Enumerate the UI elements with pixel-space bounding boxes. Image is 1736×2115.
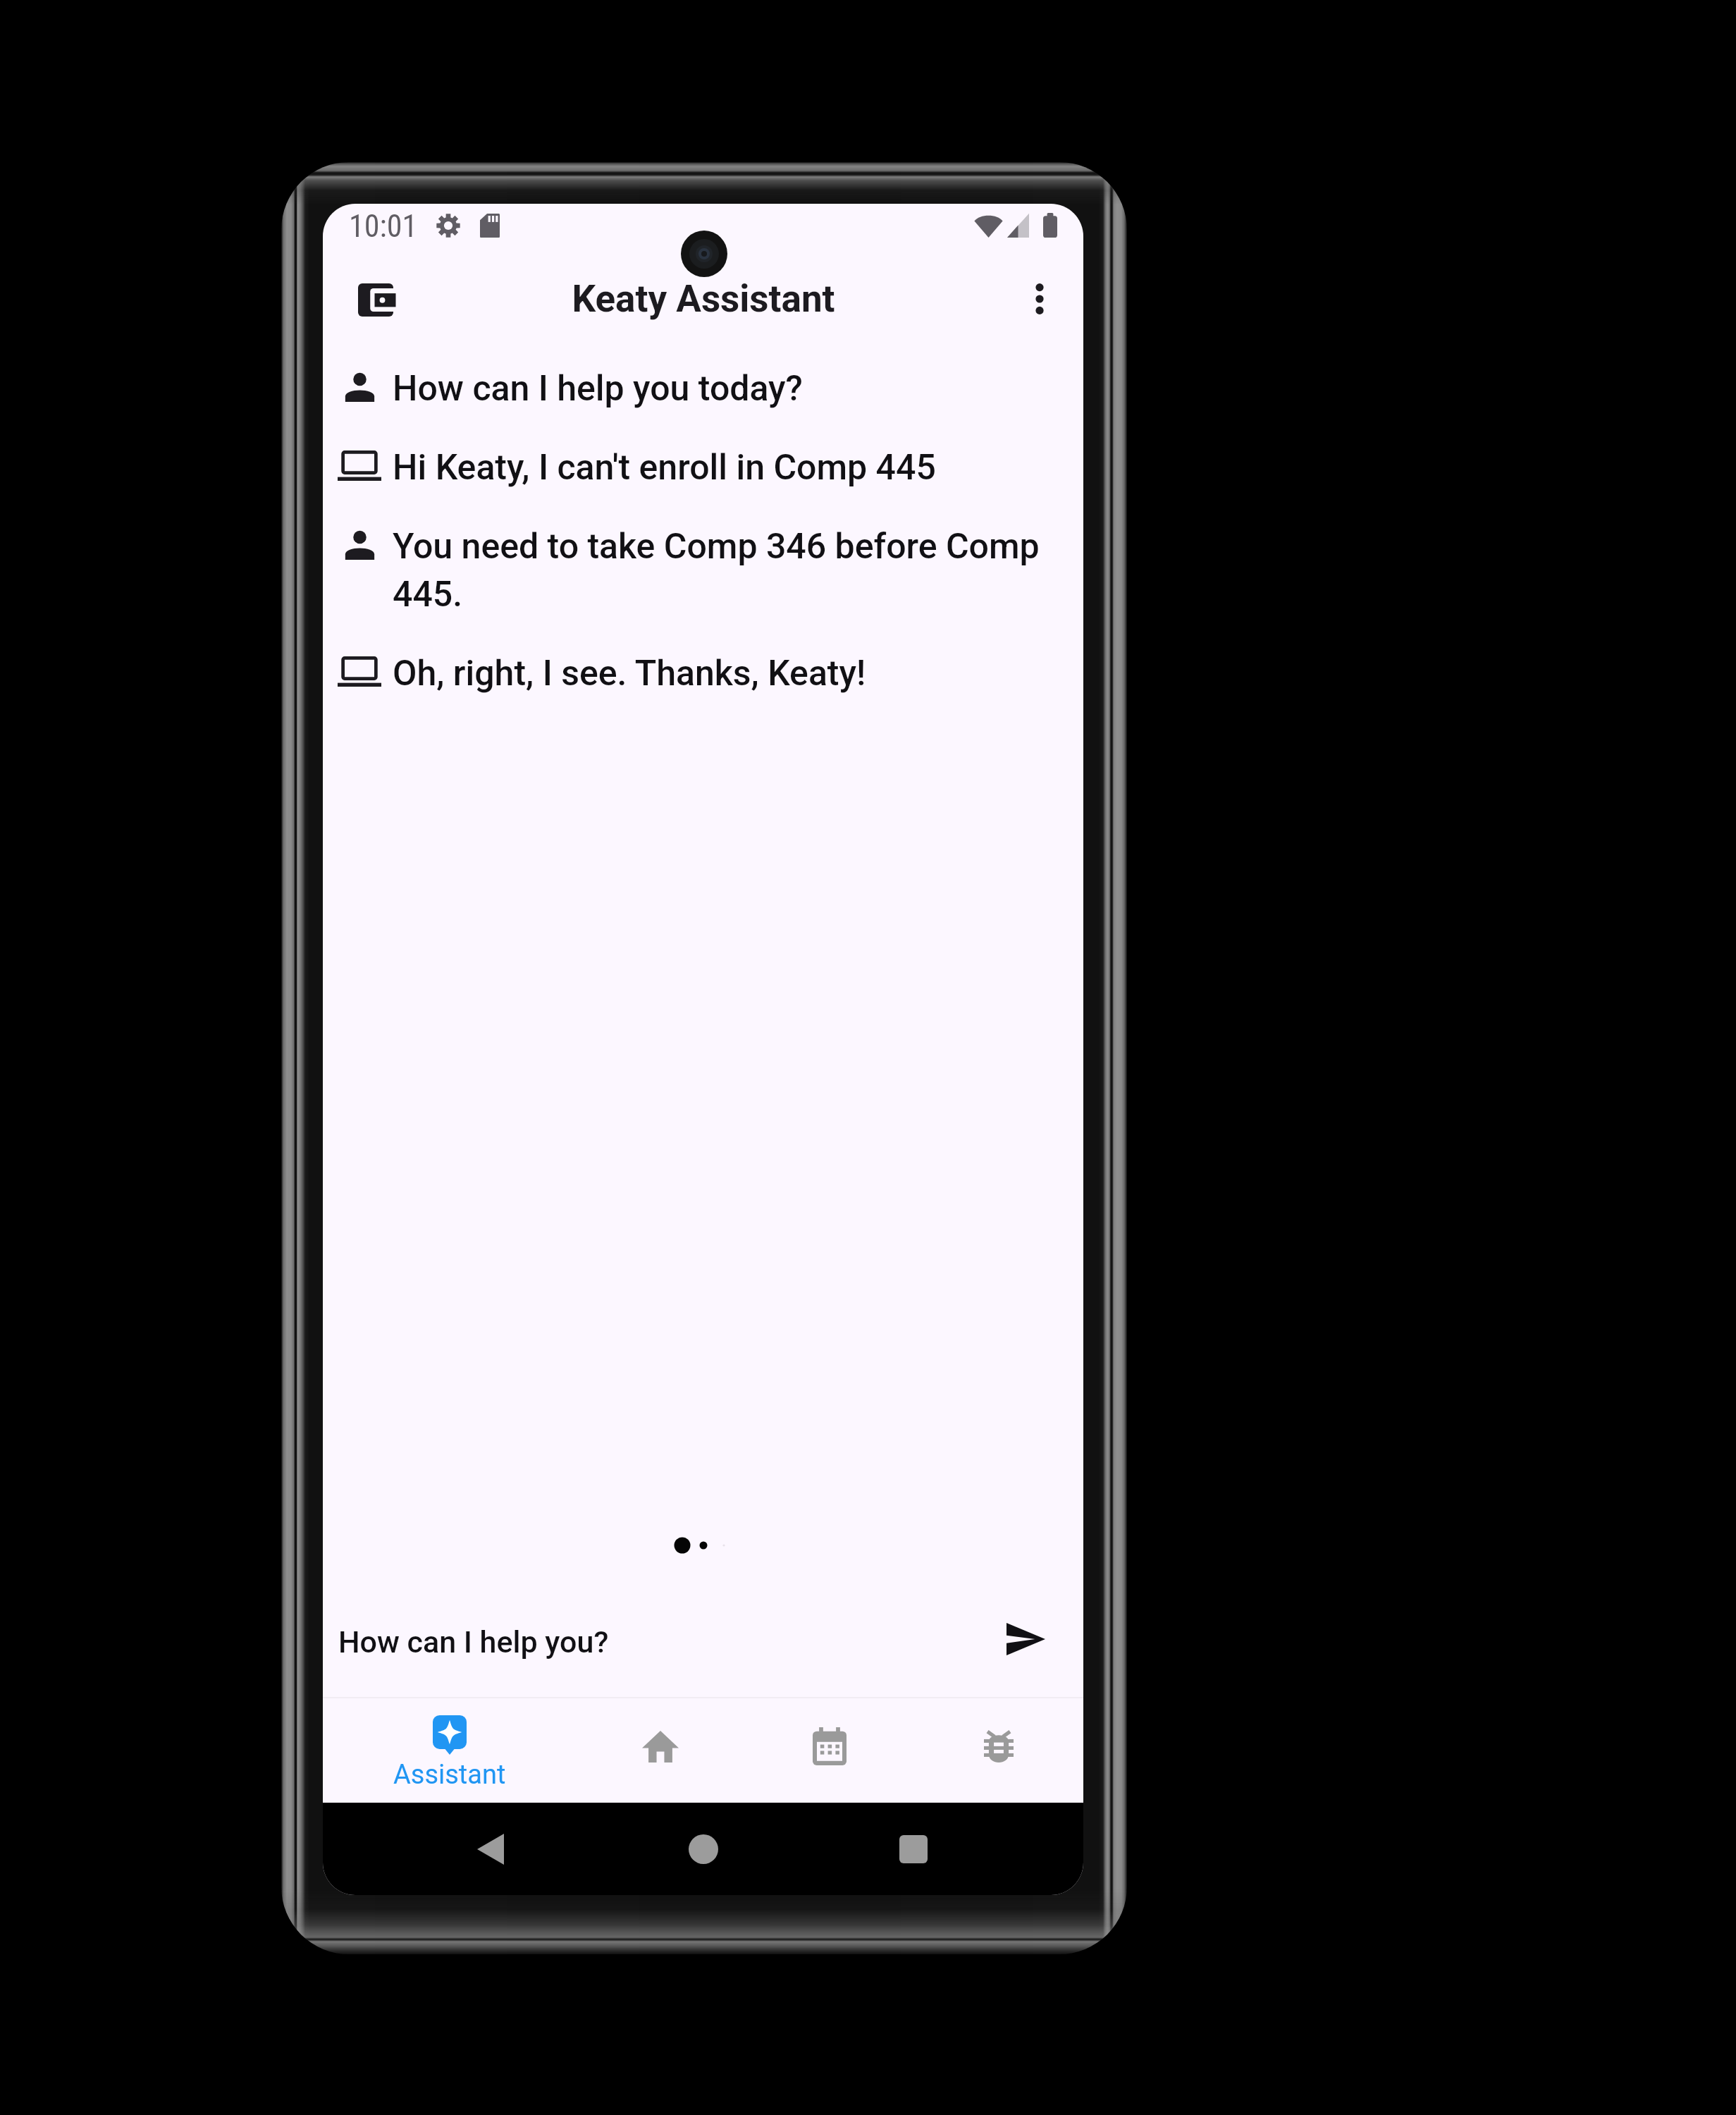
button[interactable]: Oh, right, I see. Thanks, Keaty! xyxy=(323,632,1083,711)
button[interactable]: Bug xyxy=(914,1694,1083,1798)
staticText: Hi Keaty, I can't enroll in Comp 445 xyxy=(393,441,936,489)
staticText: How can I help you? xyxy=(338,1624,609,1660)
button[interactable]: How can I help you today? xyxy=(323,347,1083,426)
button[interactable]: Hi Keaty, I can't enroll in Comp 445 xyxy=(323,426,1083,505)
staticText: How can I help you today? xyxy=(393,362,803,410)
staticText: 10:01 xyxy=(349,208,418,245)
staticText: Keaty Assistant xyxy=(572,277,835,321)
button[interactable]: You need to take Comp 346 before Comp 44… xyxy=(323,505,1083,632)
button[interactable]: Assistant xyxy=(323,1694,576,1798)
staticText: You need to take Comp 346 before Comp 44… xyxy=(393,520,1052,616)
button[interactable]: Calendar xyxy=(745,1694,914,1798)
staticText: Oh, right, I see. Thanks, Keaty! xyxy=(393,647,866,695)
button[interactable]: Wallet xyxy=(349,273,402,326)
button[interactable]: Recents xyxy=(875,1810,952,1888)
button[interactable]: More options xyxy=(1013,272,1066,326)
staticText: Assistant xyxy=(393,1759,506,1791)
button[interactable]: Home xyxy=(665,1810,742,1888)
button[interactable]: Back xyxy=(452,1810,529,1888)
button[interactable]: How can I help you? xyxy=(323,1597,1083,1688)
button[interactable]: Home xyxy=(576,1694,745,1798)
button[interactable]: Send xyxy=(997,1611,1054,1667)
